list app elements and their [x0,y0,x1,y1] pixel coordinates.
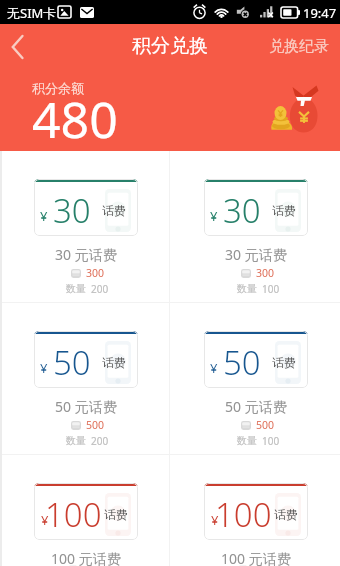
staticText: ¥ [211,511,219,529]
button[interactable]: ¥ [0,303,169,454]
staticText: 话费 [272,203,296,218]
staticText: 数量 [66,282,86,295]
staticText: 100 元话费 [221,549,291,566]
button[interactable]: ¥ [170,303,340,454]
staticText: 话费 [274,507,298,522]
staticText: 话费 [272,355,296,370]
button[interactable]: Back [0,30,34,64]
staticText: ¥ [210,359,218,377]
staticText: 100 元话费 [51,549,121,566]
staticText: 无SIM卡 [7,4,57,22]
staticText: 50 元话费 [225,397,287,416]
staticText: 数量 [237,282,257,295]
button[interactable]: ¥ [0,455,169,566]
staticText: 500 [86,418,105,432]
staticText: 数量 [66,434,86,447]
staticText: 话费 [102,355,126,370]
staticText: 兑换纪录 [269,37,329,56]
staticText: 30 [223,188,261,233]
staticText: 100 [262,434,280,448]
staticText: 100 [215,492,272,537]
button[interactable]: ¥ [170,151,340,302]
staticText: 数量 [237,434,257,447]
staticText: 100 [262,282,280,296]
staticText: 50 元话费 [55,397,117,416]
button[interactable]: ¥ [170,455,340,566]
staticText: 50 [53,340,91,385]
staticText: 200 [91,434,109,448]
staticText: 积分余额 [32,80,84,96]
staticText: ¥ [41,511,49,529]
staticText: 积分兑换 [132,34,208,58]
staticText: 100 [45,492,102,537]
staticText: 480 [32,85,118,153]
staticText: 300 [86,266,105,280]
staticText: 19:47 [303,4,337,22]
button[interactable]: 兑换纪录 [255,31,340,61]
staticText: 300 [256,266,275,280]
staticText: 30 元话费 [225,245,287,264]
staticText: 500 [256,418,275,432]
staticText: 30 元话费 [55,245,117,264]
staticText: 话费 [102,203,126,218]
staticText: ¥ [210,207,218,225]
staticText: ¥ [40,207,48,225]
staticText: ¥ [40,359,48,377]
staticText: 话费 [104,507,128,522]
button[interactable]: ¥ [0,151,169,302]
staticText: 30 [53,188,91,233]
staticText: 50 [223,340,261,385]
staticText: 200 [91,282,109,296]
